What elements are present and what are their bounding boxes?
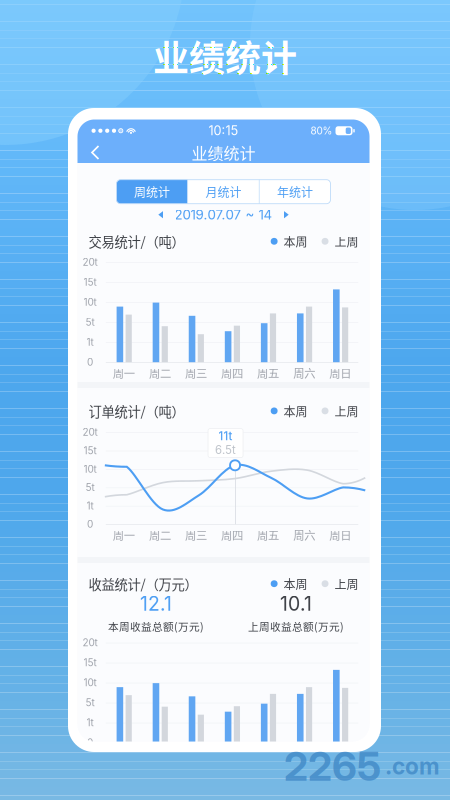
staticText: 15t	[83, 445, 96, 457]
staticText: 周三	[185, 364, 207, 381]
staticText: 5t	[85, 697, 94, 709]
staticText: 周五	[257, 526, 279, 543]
staticText: 2019.07.07 ~ 14	[174, 207, 272, 223]
staticText: 上周	[334, 402, 358, 420]
staticText: .com	[385, 752, 440, 780]
staticText: 业绩统计	[153, 30, 297, 82]
staticText: 本周	[284, 575, 308, 592]
button[interactable]: 下一周	[280, 208, 291, 222]
staticText: 收益统计/（万元）	[88, 574, 197, 593]
staticText: 上周收益总额(万元)	[248, 618, 344, 634]
button[interactable]: 月统计	[188, 180, 259, 204]
staticText: 周日	[329, 526, 351, 543]
staticText: 周统计	[134, 183, 170, 200]
staticText: 10t	[83, 463, 96, 475]
staticText: 15t	[83, 657, 96, 669]
staticText: 20t	[82, 637, 97, 649]
staticText: 20t	[82, 426, 97, 438]
staticText: 周四	[221, 364, 243, 381]
staticText: 周五	[257, 364, 279, 381]
staticText: 11t	[219, 429, 233, 443]
staticText: 周三	[185, 526, 207, 543]
button[interactable]: 返回	[81, 142, 111, 163]
staticText: 本周	[284, 233, 308, 250]
staticText: 20t	[82, 256, 97, 268]
staticText: 业绩统计	[191, 141, 255, 164]
button[interactable]: 年统计	[260, 180, 330, 204]
staticText: 5t	[85, 481, 94, 493]
staticText: 周二	[149, 526, 171, 543]
staticText: 0	[87, 356, 93, 368]
staticText: 本周	[284, 402, 308, 420]
staticText: 6.5t	[215, 443, 236, 457]
staticText: 1t	[86, 500, 93, 512]
staticText: 本周收益总额(万元)	[108, 618, 204, 634]
staticText: 10t	[83, 296, 96, 308]
staticText: 年统计	[277, 183, 313, 200]
staticText: 周二	[149, 364, 171, 381]
staticText: 0	[87, 518, 93, 530]
staticText: 交易统计/（吨）	[88, 232, 184, 251]
staticText: 周四	[221, 526, 243, 543]
staticText: 80%	[310, 125, 332, 137]
staticText: 10.1	[280, 592, 312, 615]
staticText: 15t	[83, 276, 96, 288]
staticText: 5t	[85, 316, 94, 328]
button[interactable]: 周统计	[116, 180, 187, 204]
staticText: 订单统计/（吨）	[88, 401, 184, 420]
staticText: 1t	[86, 336, 93, 348]
staticText: 0	[87, 737, 93, 749]
staticText: 周一	[113, 364, 135, 381]
staticText: 上周	[334, 233, 358, 250]
staticText: 周六	[293, 526, 315, 543]
staticText: 月统计	[205, 183, 241, 200]
staticText: 10:15	[208, 123, 238, 138]
staticText: 周六	[293, 364, 315, 381]
staticText: 周日	[329, 364, 351, 381]
staticText: 周一	[113, 526, 135, 543]
button[interactable]: 上一周	[155, 208, 166, 222]
staticText: 1t	[86, 717, 93, 729]
staticText: 2265	[284, 742, 381, 790]
staticText: 12.1	[140, 592, 172, 615]
staticText: 10t	[83, 677, 96, 689]
staticText: 上周	[334, 575, 358, 592]
